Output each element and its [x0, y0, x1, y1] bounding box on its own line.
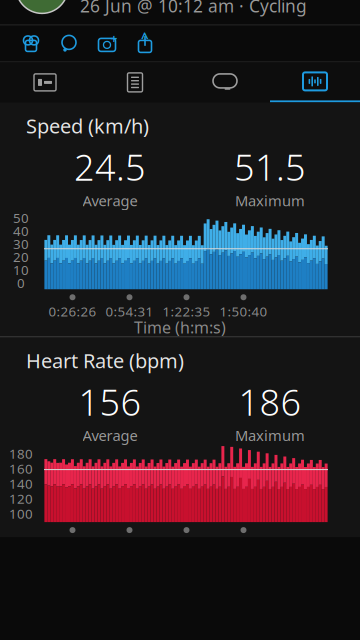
- button[interactable]: Add photo: [88, 28, 126, 58]
- button[interactable]: Laps: [180, 62, 270, 102]
- staticText: 26 Jun @ 10:12 am · Cycling: [80, 0, 307, 17]
- staticText: Speed (km/h): [26, 112, 149, 139]
- staticText: Average: [82, 191, 137, 210]
- staticText: 24.5: [74, 143, 146, 191]
- button[interactable]: Comment: [50, 28, 88, 58]
- staticText: Average: [82, 426, 137, 445]
- staticText: 1:22:35: [162, 302, 210, 320]
- staticText: +: [110, 30, 117, 46]
- staticText: 186: [238, 378, 301, 426]
- staticText: 20: [13, 248, 29, 266]
- button[interactable]: Map: [0, 62, 90, 102]
- staticText: 51.5: [234, 143, 306, 191]
- button[interactable]: Like: [12, 28, 50, 58]
- staticText: 40: [13, 222, 29, 240]
- staticText: 10: [13, 261, 29, 279]
- staticText: Heart Rate (bpm): [26, 347, 184, 374]
- staticText: 120: [9, 490, 33, 507]
- staticText: Maximum: [235, 191, 305, 210]
- staticText: 100: [9, 505, 33, 522]
- staticText: 140: [9, 475, 33, 492]
- staticText: 1:50:40: [219, 302, 267, 320]
- staticText: ^: [141, 29, 149, 47]
- button[interactable]: Charts: [270, 62, 360, 102]
- staticText: Maximum: [235, 426, 305, 445]
- staticText: 0: [17, 274, 25, 292]
- staticText: 180: [9, 445, 33, 462]
- button[interactable]: Share: [126, 28, 164, 58]
- staticText: 156: [78, 378, 141, 426]
- staticText: 160: [9, 460, 33, 477]
- staticText: 30: [13, 235, 29, 253]
- button[interactable]: Summary: [90, 62, 180, 102]
- staticText: Time (h:m:s): [134, 317, 226, 338]
- staticText: 0:54:31: [105, 302, 153, 320]
- staticText: 0:26:26: [48, 302, 96, 320]
- staticText: 50: [13, 209, 29, 227]
